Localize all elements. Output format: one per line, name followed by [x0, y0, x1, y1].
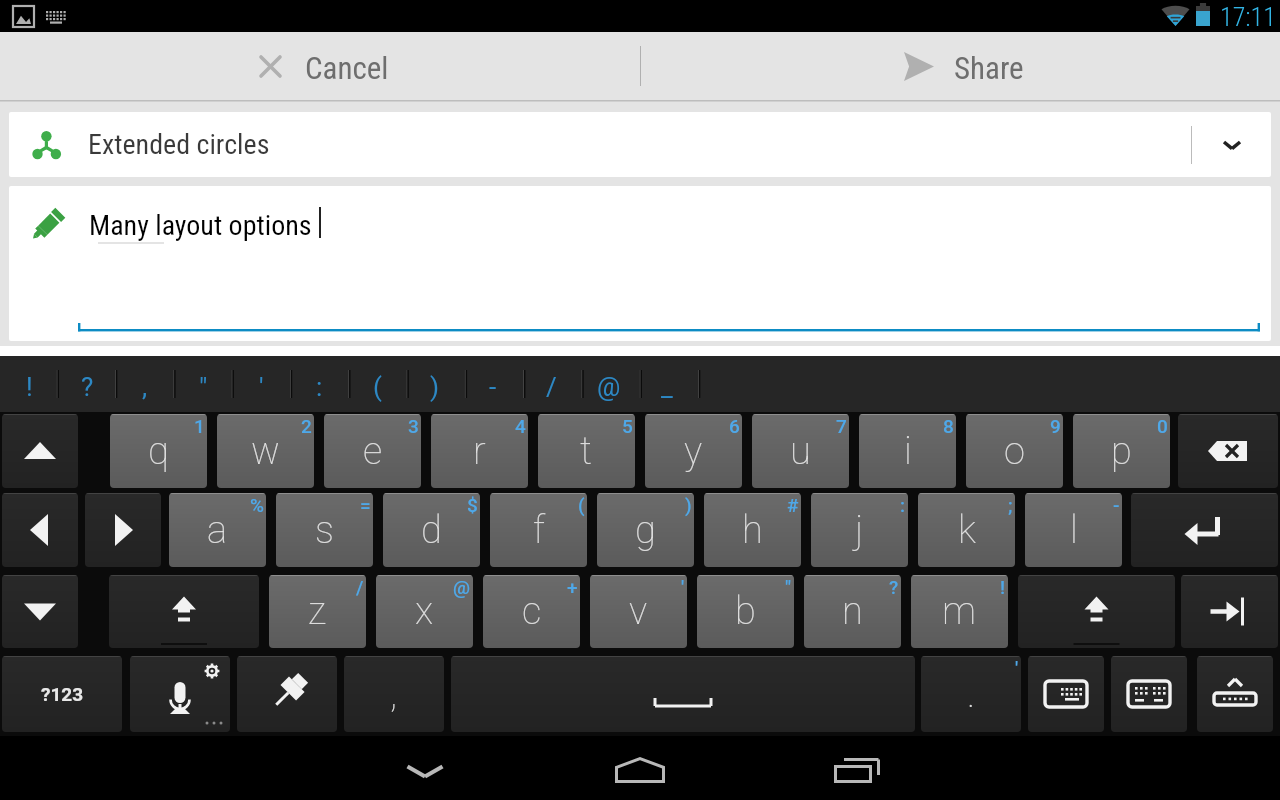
- button[interactable]: o: [966, 414, 1063, 488]
- staticText: =: [360, 494, 371, 516]
- button[interactable]: y: [645, 414, 742, 488]
- staticText: :: [900, 494, 906, 516]
- staticText: 6: [729, 415, 740, 437]
- button[interactable]: ,: [344, 656, 444, 732]
- staticText: ?123: [41, 683, 84, 705]
- button[interactable]: Recent apps: [817, 736, 897, 800]
- staticText: z: [308, 589, 327, 634]
- staticText: 17:11: [1220, 2, 1276, 32]
- staticText: @: [453, 576, 471, 598]
- button[interactable]: r: [431, 414, 528, 488]
- staticText: ?: [889, 576, 899, 598]
- button[interactable]: m: [911, 575, 1008, 648]
- button[interactable]: [2, 414, 78, 488]
- button[interactable]: Home: [600, 736, 680, 800]
- staticText: 1: [194, 415, 205, 437]
- button[interactable]: [2, 575, 78, 648]
- button[interactable]: [2, 493, 78, 567]
- button[interactable]: l: [1025, 493, 1122, 567]
- button[interactable]: h: [704, 493, 801, 567]
- button[interactable]: w: [217, 414, 314, 488]
- staticText: p: [1111, 429, 1132, 474]
- staticText: 0: [1157, 415, 1168, 437]
- button[interactable]: Extended circles: [9, 112, 1271, 177]
- staticText: ?: [81, 372, 94, 402]
- button[interactable]: [1028, 656, 1104, 732]
- button[interactable]: v: [590, 575, 687, 648]
- button[interactable]: [1018, 575, 1175, 648]
- button[interactable]: .: [921, 656, 1021, 732]
- button[interactable]: ?123: [2, 656, 122, 732]
- button[interactable]: [109, 575, 259, 648]
- staticText: .: [967, 672, 976, 717]
- button[interactable]: b: [697, 575, 794, 648]
- staticText: u: [790, 429, 811, 474]
- button[interactable]: u: [752, 414, 849, 488]
- staticText: ,: [142, 372, 148, 402]
- button[interactable]: [1111, 656, 1187, 732]
- button[interactable]: p: [1073, 414, 1170, 488]
- button[interactable]: [85, 493, 161, 567]
- button[interactable]: s: [276, 493, 373, 567]
- button[interactable]: g: [597, 493, 694, 567]
- button[interactable]: [1197, 656, 1273, 732]
- button[interactable]: [1178, 414, 1278, 488]
- button[interactable]: [130, 656, 230, 732]
- staticText: Cancel: [305, 50, 389, 86]
- staticText: c: [522, 589, 542, 634]
- staticText: !: [1000, 576, 1006, 598]
- button[interactable]: (: [348, 356, 406, 412]
- button[interactable]: i: [859, 414, 956, 488]
- staticText: +: [567, 576, 578, 598]
- staticText: ': [681, 576, 685, 598]
- staticText: s: [315, 508, 334, 553]
- button[interactable]: z: [269, 575, 366, 648]
- button[interactable]: ?: [58, 356, 116, 412]
- button[interactable]: ,: [116, 356, 174, 412]
- staticText: x: [415, 589, 434, 634]
- button[interactable]: n: [804, 575, 901, 648]
- staticText: /: [546, 372, 557, 402]
- button[interactable]: ): [406, 356, 464, 412]
- staticText: Many layout options: [89, 209, 312, 242]
- button[interactable]: t: [538, 414, 635, 488]
- button[interactable]: f: [490, 493, 587, 567]
- button[interactable]: [1181, 575, 1278, 648]
- button[interactable]: _: [638, 356, 696, 412]
- button[interactable]: !: [0, 356, 58, 412]
- staticText: w: [251, 429, 280, 474]
- staticText: o: [1004, 429, 1025, 474]
- button[interactable]: [1131, 493, 1278, 567]
- button[interactable]: ": [174, 356, 232, 412]
- button[interactable]: q: [110, 414, 207, 488]
- button[interactable]: ': [232, 356, 290, 412]
- button[interactable]: k: [918, 493, 1015, 567]
- button[interactable]: Share: [640, 32, 1280, 100]
- button[interactable]: -: [464, 356, 522, 412]
- button[interactable]: [237, 656, 337, 732]
- button[interactable]: Hide keyboard: [385, 736, 465, 800]
- staticText: _: [661, 372, 673, 402]
- button[interactable]: c: [483, 575, 580, 648]
- staticText: q: [148, 429, 169, 474]
- button[interactable]: @: [580, 356, 638, 412]
- button[interactable]: a: [169, 493, 266, 567]
- button[interactable]: Many layout options: [9, 186, 1271, 341]
- button[interactable]: e: [324, 414, 421, 488]
- staticText: ': [1015, 657, 1019, 679]
- staticText: (: [578, 494, 585, 516]
- staticText: h: [742, 508, 763, 553]
- staticText: :: [316, 372, 323, 402]
- button[interactable]: x: [376, 575, 473, 648]
- button[interactable]: d: [383, 493, 480, 567]
- staticText: (: [373, 372, 382, 402]
- button[interactable]: [451, 656, 915, 732]
- staticText: $: [467, 494, 478, 516]
- staticText: m: [942, 589, 977, 634]
- button[interactable]: Cancel: [0, 32, 640, 100]
- button[interactable]: /: [522, 356, 580, 412]
- button[interactable]: Expand: [1192, 112, 1271, 177]
- button[interactable]: :: [290, 356, 348, 412]
- staticText: Extended circles: [88, 128, 270, 161]
- button[interactable]: j: [811, 493, 908, 567]
